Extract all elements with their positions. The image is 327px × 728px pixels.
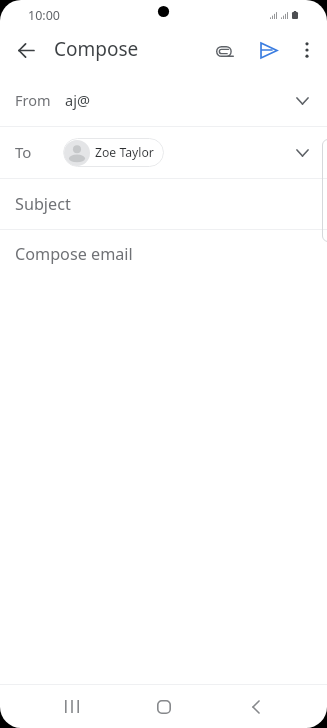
- button[interactable]: Home: [118, 685, 210, 728]
- button[interactable]: Back: [6, 30, 46, 70]
- button[interactable]: Recent apps: [26, 685, 118, 728]
- button[interactable]: Attach file: [208, 30, 248, 70]
- button[interactable]: Back: [210, 685, 302, 728]
- button[interactable]: Zoe Taylor: [63, 138, 164, 167]
- staticText: Subject: [15, 193, 71, 215]
- staticText: Compose: [54, 36, 139, 62]
- staticText: To: [15, 142, 32, 162]
- staticText: From: [15, 90, 51, 110]
- staticText: aj@: [65, 90, 90, 110]
- button[interactable]: Compose email: [0, 230, 327, 278]
- button[interactable]: More options: [288, 31, 326, 69]
- staticText: 10:00: [28, 7, 60, 24]
- staticText: Compose email: [15, 243, 133, 265]
- button[interactable]: From: [0, 76, 327, 126]
- button[interactable]: Subject: [0, 179, 327, 229]
- button[interactable]: To: [0, 127, 327, 178]
- button[interactable]: Send: [248, 30, 288, 70]
- staticText: Zoe Taylor: [95, 144, 154, 161]
